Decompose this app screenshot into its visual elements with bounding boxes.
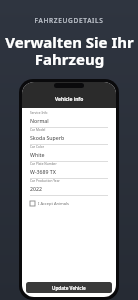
staticText: W-3689 TX	[30, 168, 56, 175]
staticText: I Accept Animals	[38, 201, 69, 206]
button[interactable]: Service Info	[24, 111, 114, 128]
staticText: Car Plate Number	[30, 162, 57, 166]
staticText: Normal	[30, 117, 49, 124]
staticText: Skoda Superb	[30, 134, 65, 141]
button[interactable]: Car Model	[24, 128, 114, 145]
staticText: Car Production Year	[30, 179, 60, 183]
staticText: Car Color	[30, 145, 44, 149]
staticText: Service Info	[30, 111, 48, 115]
staticText: 2022	[30, 185, 42, 192]
button[interactable]: Car Plate Number	[24, 162, 114, 179]
button[interactable]: Car Color	[24, 145, 114, 162]
staticText: Verwalten Sie Ihr Fahrzeug	[5, 32, 134, 70]
staticText: Car Model	[30, 128, 46, 132]
button[interactable]: I Accept Animals	[24, 199, 114, 208]
other: Phone notch	[54, 83, 84, 88]
staticText: FAHRZEUGDETAILS	[34, 16, 104, 25]
staticText: Update Vehicle	[52, 285, 86, 291]
button[interactable]: Update Vehicle	[26, 282, 112, 293]
staticText: Vehicle info	[55, 96, 84, 103]
staticText: White	[30, 151, 45, 158]
button[interactable]: Car Production Year	[24, 179, 114, 196]
